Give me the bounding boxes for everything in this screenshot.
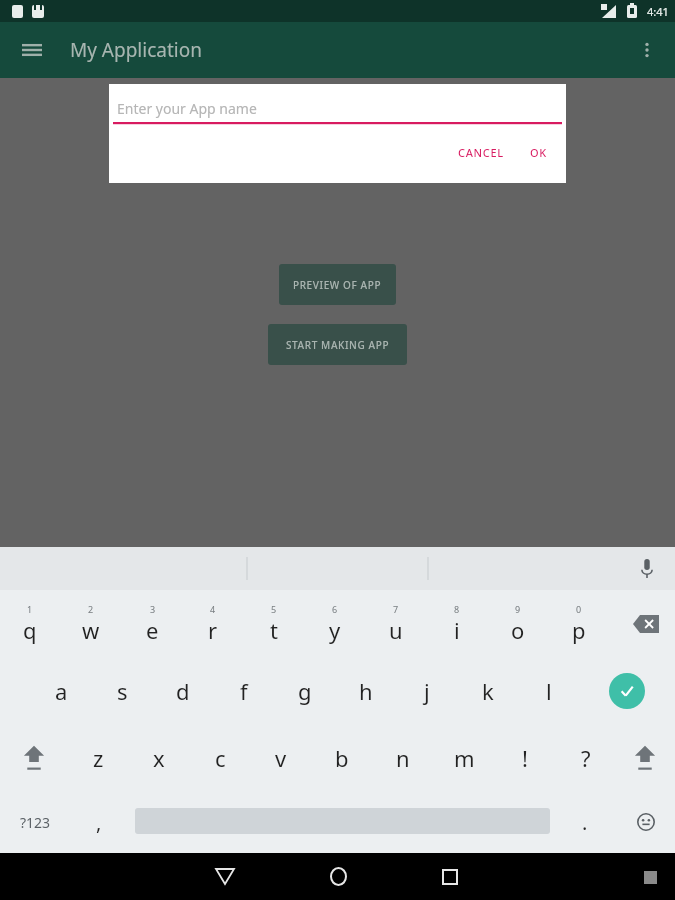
button[interactable]: More options (625, 28, 669, 72)
staticText: z (93, 743, 104, 773)
button[interactable]: a (31, 657, 91, 724)
button[interactable]: Home (307, 853, 369, 900)
button[interactable]: ?123 (6, 791, 64, 853)
button[interactable]: 5 (244, 590, 304, 657)
staticText: f (240, 676, 248, 706)
staticText: m (454, 743, 475, 773)
button[interactable]: , (69, 791, 129, 853)
staticText: p (572, 615, 586, 645)
button[interactable]: Shift (4, 724, 64, 791)
staticText: j (424, 676, 430, 706)
button[interactable]: ? (556, 724, 616, 791)
staticText: i (454, 615, 460, 645)
staticText: g (298, 676, 312, 706)
staticText: 1 (27, 603, 33, 615)
button[interactable]: Recent apps (419, 853, 481, 900)
button[interactable]: b (312, 724, 372, 791)
button[interactable]: OK (521, 138, 556, 167)
staticText: 8 (454, 603, 460, 615)
staticText: . (582, 809, 588, 836)
button[interactable]: Keyboard layout (633, 860, 667, 894)
staticText: OK (530, 145, 547, 160)
button[interactable]: 4 (183, 590, 243, 657)
staticText: d (176, 676, 190, 706)
button[interactable]: s (92, 657, 152, 724)
button[interactable]: Backspace (617, 590, 675, 657)
button[interactable]: c (190, 724, 250, 791)
button[interactable]: n (373, 724, 433, 791)
button[interactable]: 9 (488, 590, 548, 657)
staticText: n (396, 743, 410, 773)
staticText: l (546, 676, 552, 706)
button[interactable]: x (129, 724, 189, 791)
staticText: 5 (271, 603, 277, 615)
button[interactable]: 2 (61, 590, 121, 657)
button[interactable]: d (153, 657, 213, 724)
staticText: 4 (210, 603, 216, 615)
button[interactable]: z (68, 724, 128, 791)
staticText: ?123 (20, 813, 51, 832)
button[interactable]: k (458, 657, 518, 724)
button[interactable]: Back (194, 853, 256, 900)
button[interactable]: 7 (366, 590, 426, 657)
button[interactable]: 6 (305, 590, 365, 657)
staticText: a (55, 676, 68, 706)
staticText: t (270, 615, 278, 645)
staticText: Enter your App name (117, 99, 257, 118)
staticText: CANCEL (458, 145, 504, 160)
button[interactable]: START MAKING APP (268, 324, 407, 365)
staticText: s (117, 676, 128, 706)
staticText: PREVIEW OF APP (293, 278, 382, 292)
staticText: 0 (576, 603, 582, 615)
staticText: w (82, 615, 100, 645)
staticText: b (335, 743, 349, 773)
staticText: v (275, 743, 287, 773)
button[interactable]: Shift (615, 724, 675, 791)
staticText: START MAKING APP (286, 338, 390, 352)
button[interactable]: . (555, 791, 615, 853)
staticText: 7 (393, 603, 399, 615)
button[interactable]: v (251, 724, 311, 791)
button[interactable]: 3 (122, 590, 182, 657)
button[interactable]: f (214, 657, 274, 724)
staticText: ? (581, 743, 591, 773)
button[interactable]: m (434, 724, 494, 791)
button[interactable]: Open navigation drawer (10, 28, 54, 72)
staticText: My Application (70, 37, 202, 63)
button[interactable]: Voice input (627, 549, 667, 589)
button[interactable]: Enter your App name (109, 84, 566, 125)
button[interactable]: Enter (597, 657, 657, 724)
staticText: y (329, 615, 341, 645)
button[interactable]: j (397, 657, 457, 724)
button[interactable]: Emoji (618, 791, 674, 853)
button[interactable]: PREVIEW OF APP (279, 264, 396, 305)
staticText: 6 (332, 603, 338, 615)
staticText: u (389, 615, 403, 645)
staticText: c (215, 743, 226, 773)
staticText: , (96, 809, 102, 836)
staticText: 3 (150, 603, 156, 615)
button[interactable]: 0 (549, 590, 609, 657)
staticText: q (23, 615, 37, 645)
button[interactable]: CANCEL (449, 138, 513, 167)
staticText: 9 (515, 603, 521, 615)
button[interactable]: 1 (0, 590, 60, 657)
staticText: e (146, 615, 159, 645)
staticText: 2 (88, 603, 94, 615)
button[interactable]: l (519, 657, 579, 724)
staticText: x (153, 743, 165, 773)
button[interactable]: 8 (427, 590, 487, 657)
button[interactable]: g (275, 657, 335, 724)
button[interactable]: h (336, 657, 396, 724)
button[interactable]: ! (495, 724, 555, 791)
staticText: r (208, 615, 218, 645)
staticText: ! (522, 743, 528, 773)
staticText: 4:41 (647, 4, 669, 19)
staticText: k (482, 676, 494, 706)
staticText: h (359, 676, 373, 706)
staticText: o (511, 615, 525, 645)
